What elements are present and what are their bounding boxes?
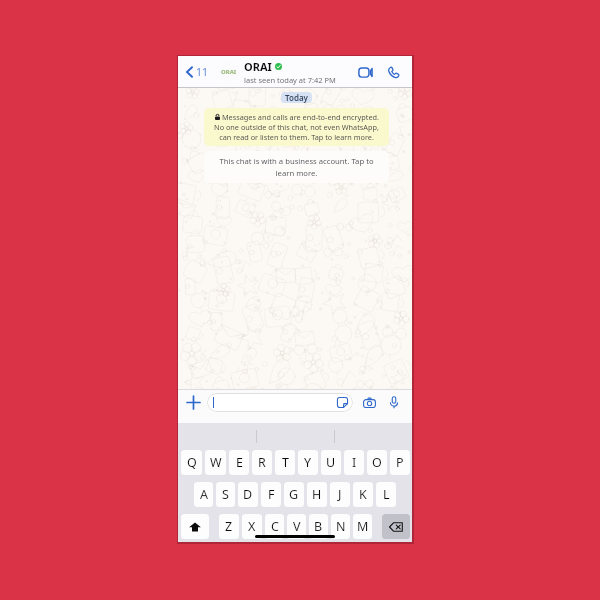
staticText: P xyxy=(396,454,404,471)
button[interactable]: R xyxy=(252,450,272,475)
button[interactable]: ORAI xyxy=(244,59,355,85)
button[interactable]: G xyxy=(284,482,304,507)
button[interactable]: D xyxy=(238,482,258,507)
staticText: V xyxy=(293,518,301,535)
button[interactable]: X xyxy=(242,514,262,539)
staticText: X xyxy=(248,518,256,535)
staticText: L xyxy=(383,486,390,503)
button[interactable]: Messages and calls are end-to-end encryp… xyxy=(204,108,389,146)
button[interactable]: I xyxy=(344,450,364,475)
button[interactable]: Y xyxy=(298,450,318,475)
staticText: K xyxy=(359,486,367,503)
staticText: Today xyxy=(285,92,308,103)
button[interactable]: A xyxy=(194,482,213,507)
staticText: H xyxy=(312,486,322,503)
button[interactable]: F xyxy=(261,482,281,507)
button[interactable]: This chat is with a business account. Ta… xyxy=(204,151,389,183)
staticText: This chat is with a business account. Ta… xyxy=(211,156,382,178)
staticText: 11 xyxy=(196,65,209,79)
button[interactable]: Back xyxy=(183,62,212,82)
button[interactable]: Shift xyxy=(181,514,209,539)
staticText: ORAI xyxy=(244,59,272,74)
button[interactable]: T xyxy=(275,450,295,475)
button[interactable]: W xyxy=(205,450,226,475)
staticText: D xyxy=(243,486,253,503)
staticText: W xyxy=(210,454,222,471)
button[interactable]: Video call xyxy=(355,62,375,82)
button[interactable]: Profile photo xyxy=(219,62,239,82)
staticText: N xyxy=(336,518,346,535)
staticText: F xyxy=(268,486,275,503)
staticText: O xyxy=(372,454,382,471)
staticText: T xyxy=(282,454,289,471)
staticText: G xyxy=(289,486,299,503)
staticText: Q xyxy=(187,454,197,471)
staticText: J xyxy=(338,486,342,503)
staticText: Y xyxy=(304,454,312,471)
button[interactable]: Camera xyxy=(360,393,378,411)
button[interactable]: Z xyxy=(219,514,239,539)
staticText: S xyxy=(222,486,229,503)
button[interactable]: E xyxy=(229,450,249,475)
button[interactable]: C xyxy=(265,514,284,539)
button[interactable]: O xyxy=(367,450,387,475)
staticText: I xyxy=(352,454,357,471)
staticText: B xyxy=(314,518,323,535)
staticText: ORAI xyxy=(221,68,237,76)
button[interactable] xyxy=(207,393,353,412)
button[interactable]: Today xyxy=(281,92,312,103)
button[interactable]: K xyxy=(353,482,373,507)
button[interactable]: V xyxy=(287,514,306,539)
button[interactable]: M xyxy=(353,514,372,539)
staticText: E xyxy=(236,454,243,471)
button[interactable]: J xyxy=(330,482,350,507)
button[interactable]: Attach xyxy=(184,393,202,411)
button[interactable]: L xyxy=(376,482,396,507)
staticText: R xyxy=(258,454,266,471)
button[interactable]: U xyxy=(321,450,341,475)
button[interactable]: Voice call xyxy=(383,62,403,82)
button[interactable]: Voice message xyxy=(385,393,403,411)
staticText: Z xyxy=(225,518,233,535)
staticText: last seen today at 7:42 PM xyxy=(244,75,336,85)
staticText: M xyxy=(357,518,369,535)
button[interactable]: Backspace xyxy=(382,514,410,539)
button[interactable]: S xyxy=(216,482,235,507)
staticText: A xyxy=(200,486,208,503)
button[interactable]: Q xyxy=(181,450,202,475)
button[interactable]: P xyxy=(390,450,410,475)
button[interactable]: N xyxy=(331,514,350,539)
button[interactable]: H xyxy=(307,482,327,507)
staticText: U xyxy=(326,454,336,471)
staticText: Messages and calls are end-to-end encryp… xyxy=(222,112,379,122)
staticText: C xyxy=(271,518,279,535)
staticText: No one outside of this chat, not even Wh… xyxy=(214,122,379,142)
button[interactable]: B xyxy=(309,514,328,539)
